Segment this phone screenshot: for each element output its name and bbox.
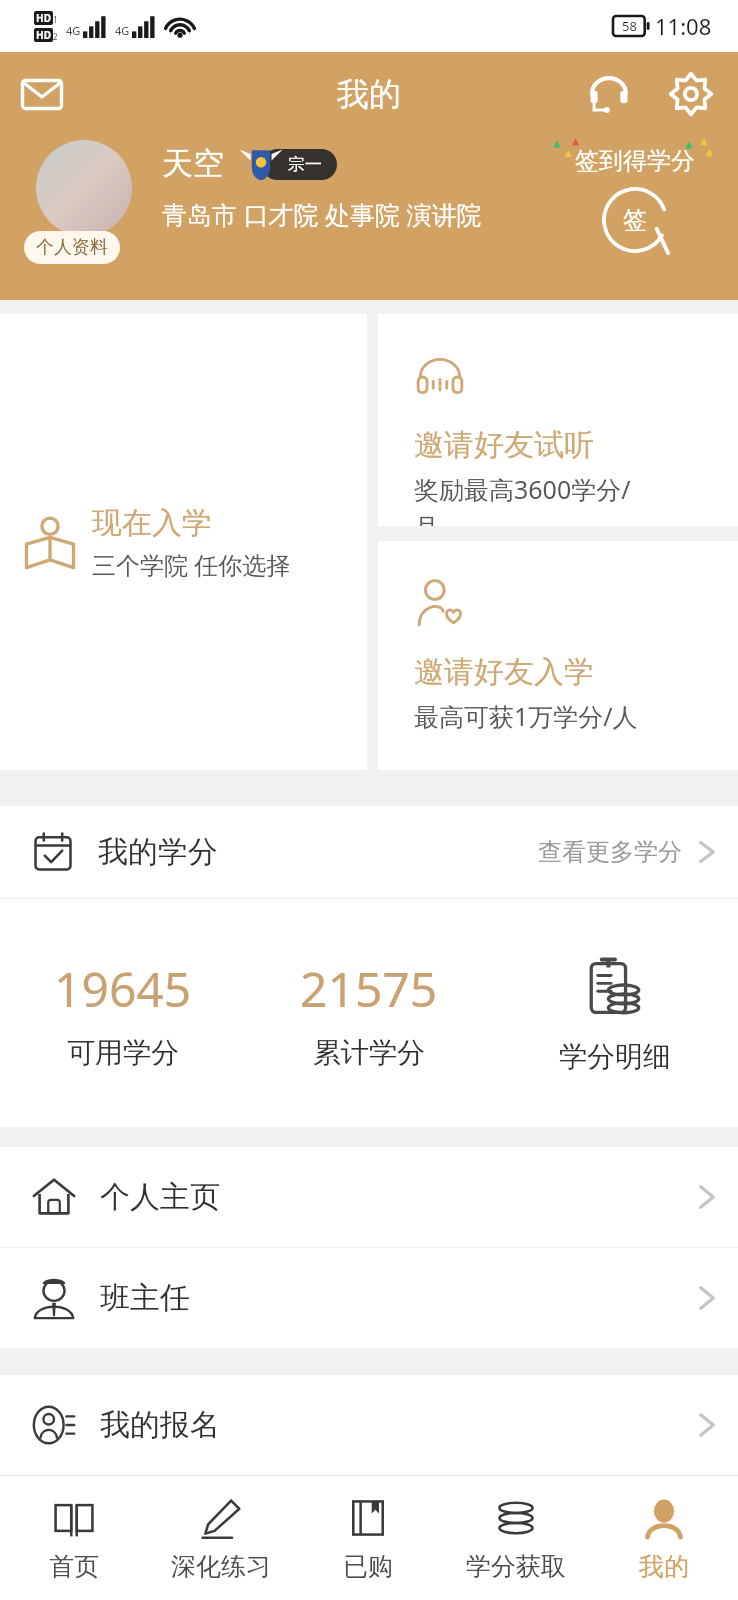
button[interactable]: 个人主页 (0, 1147, 738, 1247)
staticText: 我的报名 (100, 1406, 220, 1444)
button[interactable]: 学分明细 (492, 953, 738, 1074)
button[interactable]: Settings (660, 63, 722, 125)
staticText: 查看更多学分 (538, 837, 682, 867)
staticText: 个人资料 (36, 236, 108, 259)
button[interactable]: Customer service (578, 63, 640, 125)
staticText: 1 (53, 14, 58, 25)
button[interactable]: 签到得学分 (542, 140, 728, 256)
button[interactable]: 学分获取 (442, 1476, 590, 1600)
button[interactable]: 首页 (0, 1476, 147, 1600)
staticText: 签 (623, 205, 647, 235)
button[interactable]: 个人资料 (20, 140, 148, 264)
staticText: 2 (53, 31, 58, 42)
button[interactable]: 已购 (294, 1476, 442, 1600)
staticText: 天空 (162, 144, 224, 183)
button[interactable]: 邀请好友试听 (378, 314, 738, 526)
staticText: 个人主页 (100, 1178, 220, 1216)
staticText: 最高可获1万学分/人 (414, 699, 638, 733)
staticText: 58 (622, 17, 637, 35)
staticText: 宗一 (288, 154, 322, 175)
staticText: 学分明细 (559, 1039, 671, 1074)
staticText: 邀请好友试听 (414, 426, 594, 464)
staticText: HD (36, 28, 51, 42)
staticText: 21575 (300, 956, 438, 1021)
staticText: 奖励最高3600学分/ 月 (414, 472, 631, 526)
button[interactable]: 深化练习 (147, 1476, 294, 1600)
button[interactable]: 班主任 (0, 1248, 738, 1348)
staticText: 4G (115, 23, 130, 38)
staticText: 现在入学 (92, 504, 212, 542)
staticText: 深化练习 (171, 1551, 271, 1582)
staticText: HD (36, 11, 51, 25)
button[interactable]: 我的学分 (0, 806, 738, 898)
button[interactable]: 21575 (246, 956, 492, 1070)
staticText: 签到得学分 (575, 146, 695, 176)
staticText: 11:08 (655, 11, 712, 41)
staticText: 班主任 (100, 1279, 190, 1317)
staticText: 我的学分 (98, 833, 218, 871)
staticText: 首页 (49, 1551, 99, 1582)
staticText: 4G (66, 23, 81, 38)
staticText: 三个学院 任你选择 (92, 548, 291, 581)
button[interactable]: 我的 (590, 1476, 738, 1600)
staticText: 19645 (54, 956, 192, 1021)
staticText: 我的 (337, 74, 401, 114)
staticText: 可用学分 (67, 1035, 179, 1070)
staticText: 我的 (639, 1551, 689, 1582)
staticText: 已购 (343, 1551, 393, 1582)
staticText: 青岛市 口才院 处事院 演讲院 (162, 197, 482, 231)
button[interactable]: 邀请好友入学 (378, 541, 738, 770)
button[interactable]: 我的报名 (0, 1375, 738, 1475)
button[interactable]: 现在入学 (0, 314, 367, 770)
staticText: 学分获取 (466, 1551, 566, 1582)
staticText: 邀请好友入学 (414, 653, 594, 691)
button[interactable]: 19645 (0, 956, 246, 1070)
button[interactable]: Messages (10, 62, 74, 126)
staticText: 累计学分 (313, 1035, 425, 1070)
